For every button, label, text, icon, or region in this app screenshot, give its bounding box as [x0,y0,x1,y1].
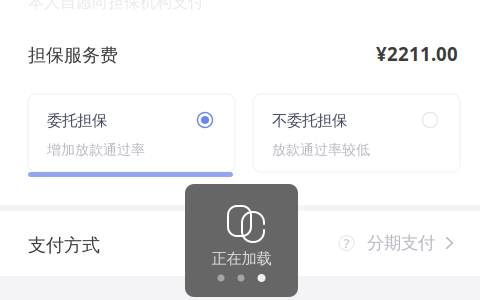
staticText: 本人自愿向担保机构支付 [28,0,204,12]
button[interactable]: 不委托担保 [253,94,460,172]
staticText: 不委托担保 [272,111,347,130]
staticText: 支付方式 [28,234,100,257]
staticText: 放款通过率较低 [272,141,370,159]
staticText: 正在加载 [211,249,271,268]
staticText: ? [343,234,349,252]
button[interactable]: ? [339,228,454,258]
staticText: 增加放款通过率 [47,141,145,159]
button[interactable]: 委托担保 [28,94,235,172]
staticText: 委托担保 [47,111,107,130]
staticText: 担保服务费 [28,44,118,67]
staticText: 分期支付 [367,232,435,254]
staticText: ¥2211.00 [376,41,458,66]
